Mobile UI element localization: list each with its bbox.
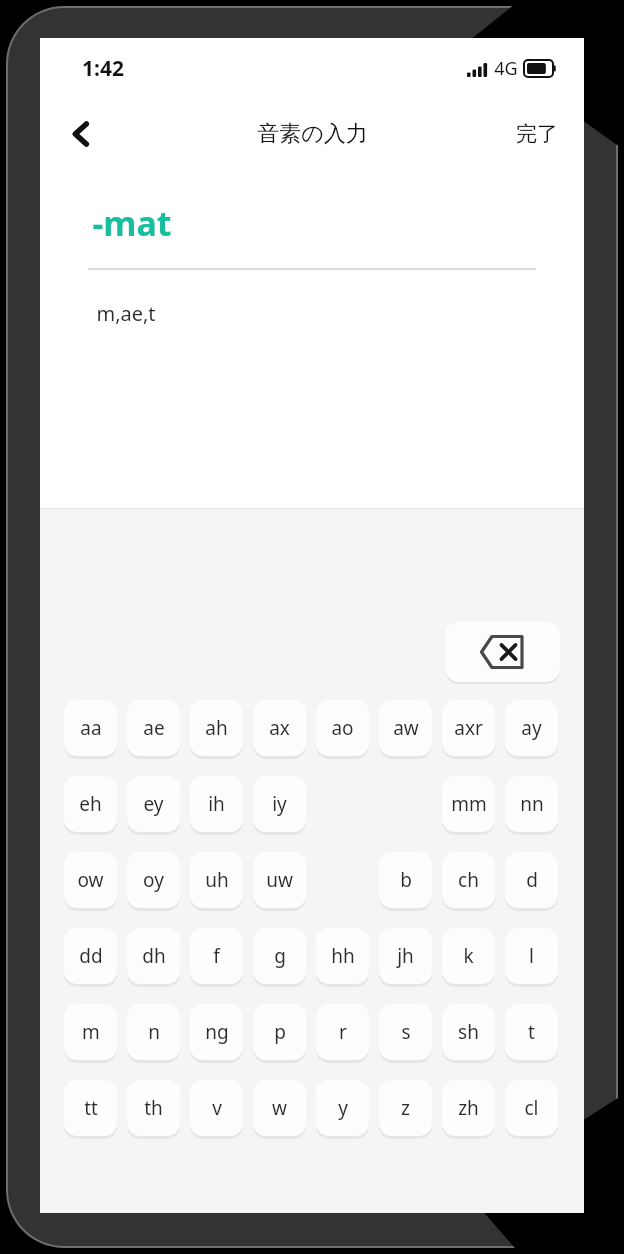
staticText: tt xyxy=(84,1095,98,1121)
button[interactable]: ey xyxy=(127,776,180,835)
button[interactable]: ae xyxy=(127,700,180,759)
button[interactable]: k xyxy=(442,928,495,987)
staticText: aa xyxy=(80,715,102,741)
staticText: dd xyxy=(79,943,103,969)
staticText: -mat xyxy=(92,200,172,246)
staticText: g xyxy=(274,943,286,969)
button[interactable]: uh xyxy=(190,852,243,911)
button[interactable]: cl xyxy=(505,1080,558,1139)
button[interactable]: 完了 xyxy=(506,113,568,155)
button[interactable]: m xyxy=(64,1004,117,1063)
staticText: n xyxy=(148,1019,160,1045)
staticText: iy xyxy=(272,791,287,817)
button[interactable]: f xyxy=(190,928,243,987)
staticText: ey xyxy=(143,791,164,817)
button[interactable]: y xyxy=(316,1080,369,1139)
button[interactable]: d xyxy=(505,852,558,911)
button[interactable]: p xyxy=(253,1004,306,1063)
staticText: eh xyxy=(79,791,102,817)
button[interactable]: hh xyxy=(316,928,369,987)
button[interactable]: ow xyxy=(64,852,117,911)
staticText: ah xyxy=(205,715,228,741)
button[interactable]: zh xyxy=(442,1080,495,1139)
staticText: oy xyxy=(143,867,164,893)
button[interactable]: dd xyxy=(64,928,117,987)
button[interactable]: z xyxy=(379,1080,432,1139)
button[interactable]: ah xyxy=(190,700,243,759)
staticText: ax xyxy=(269,715,290,741)
staticText: t xyxy=(528,1019,535,1045)
staticText: zh xyxy=(458,1095,479,1121)
staticText: hh xyxy=(331,943,355,969)
staticText: m,ae,t xyxy=(96,300,156,327)
button[interactable]: eh xyxy=(64,776,117,835)
staticText: m xyxy=(82,1019,100,1045)
staticText: z xyxy=(401,1095,410,1121)
staticText: sh xyxy=(458,1019,479,1045)
button[interactable]: Backspace xyxy=(445,622,560,682)
button[interactable]: g xyxy=(253,928,306,987)
button[interactable]: w xyxy=(253,1080,306,1139)
button[interactable]: ao xyxy=(316,700,369,759)
staticText: aw xyxy=(393,715,419,741)
staticText: uw xyxy=(266,867,293,893)
staticText: f xyxy=(213,943,220,969)
button[interactable]: axr xyxy=(442,700,495,759)
button[interactable]: dh xyxy=(127,928,180,987)
staticText: ao xyxy=(331,715,354,741)
staticText: s xyxy=(401,1019,411,1045)
staticText: k xyxy=(463,943,474,969)
staticText: y xyxy=(338,1095,348,1121)
staticText: v xyxy=(212,1095,222,1121)
button[interactable]: v xyxy=(190,1080,243,1139)
staticText: axr xyxy=(454,715,483,741)
staticText: ih xyxy=(208,791,225,817)
staticText: mm xyxy=(451,791,487,817)
button[interactable]: th xyxy=(127,1080,180,1139)
staticText: p xyxy=(274,1019,286,1045)
button[interactable]: ch xyxy=(442,852,495,911)
button[interactable]: l xyxy=(505,928,558,987)
button[interactable]: ih xyxy=(190,776,243,835)
staticText: 完了 xyxy=(516,121,558,147)
button[interactable]: tt xyxy=(64,1080,117,1139)
staticText: 1:42 xyxy=(82,54,124,83)
button[interactable]: Back xyxy=(54,106,110,162)
staticText: th xyxy=(144,1095,163,1121)
staticText: r xyxy=(339,1019,347,1045)
staticText: cl xyxy=(524,1095,539,1121)
button[interactable]: aw xyxy=(379,700,432,759)
staticText: ng xyxy=(205,1019,229,1045)
button[interactable]: s xyxy=(379,1004,432,1063)
staticText: 音素の入力 xyxy=(257,120,368,148)
button[interactable]: r xyxy=(316,1004,369,1063)
button[interactable]: nn xyxy=(505,776,558,835)
button[interactable]: ng xyxy=(190,1004,243,1063)
staticText: b xyxy=(400,867,412,893)
button[interactable]: b xyxy=(379,852,432,911)
button[interactable]: uw xyxy=(253,852,306,911)
staticText: nn xyxy=(520,791,544,817)
button[interactable]: jh xyxy=(379,928,432,987)
staticText: dh xyxy=(142,943,166,969)
button[interactable]: oy xyxy=(127,852,180,911)
button[interactable]: n xyxy=(127,1004,180,1063)
button[interactable]: sh xyxy=(442,1004,495,1063)
button[interactable]: t xyxy=(505,1004,558,1063)
staticText: ow xyxy=(77,867,104,893)
staticText: w xyxy=(272,1095,287,1121)
staticText: ch xyxy=(458,867,479,893)
staticText: l xyxy=(529,943,534,969)
staticText: ay xyxy=(521,715,542,741)
button[interactable]: ay xyxy=(505,700,558,759)
staticText: 4G xyxy=(494,56,518,81)
button[interactable]: aa xyxy=(64,700,117,759)
staticText: ae xyxy=(143,715,165,741)
staticText: jh xyxy=(397,943,414,969)
staticText: d xyxy=(526,867,538,893)
button[interactable]: mm xyxy=(442,776,495,835)
staticText: uh xyxy=(205,867,229,893)
button[interactable]: ax xyxy=(253,700,306,759)
button[interactable]: iy xyxy=(253,776,306,835)
